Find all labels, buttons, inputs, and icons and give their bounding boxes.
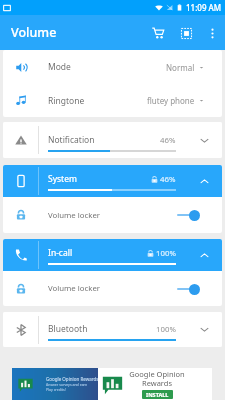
button[interactable]: Ringtone <box>3 84 222 117</box>
staticText: flutey phone <box>147 95 195 106</box>
staticText: Volume locker <box>48 283 101 294</box>
staticText: Ringtone <box>48 95 85 107</box>
button[interactable]: Mode <box>3 50 222 84</box>
button[interactable]: Google Opinion Rewards <box>98 368 212 400</box>
staticText: Google Opinion Rewards <box>129 369 185 388</box>
button[interactable]: Collapse <box>176 239 222 271</box>
staticText: Google Opinion Rewards <box>46 376 99 382</box>
button[interactable]: INSTALL <box>142 390 173 399</box>
button[interactable]: Expand <box>176 122 222 158</box>
staticText: Normal <box>166 62 195 73</box>
button[interactable]: Store <box>144 19 172 47</box>
button[interactable]: Notification <box>3 122 222 158</box>
button[interactable]: Volume locker toggle <box>176 207 202 223</box>
staticText: In-call <box>48 247 73 259</box>
staticText: 100% <box>156 248 176 259</box>
staticText: System <box>48 173 77 185</box>
button[interactable]: Presets <box>172 19 200 47</box>
button[interactable]: Expand <box>176 312 222 347</box>
staticText: 100% <box>156 324 176 335</box>
button[interactable]: Volume locker <box>3 271 222 306</box>
staticText: Volume <box>11 24 57 41</box>
staticText: 11:09 AM <box>186 2 222 13</box>
button[interactable]: In-call <box>3 239 222 271</box>
button[interactable]: Volume locker toggle <box>176 281 202 297</box>
staticText: 46% <box>160 135 176 146</box>
staticText: Answer surveys and earn Play credits! <box>46 382 88 392</box>
staticText: 46% <box>160 174 176 185</box>
button[interactable]: Volume locker <box>3 197 222 233</box>
staticText: Mode <box>48 61 71 73</box>
staticText: Volume locker <box>48 210 101 221</box>
button[interactable]: Collapse <box>176 165 222 197</box>
staticText: Bluetooth <box>48 323 88 335</box>
button[interactable]: Bluetooth <box>3 312 222 347</box>
button[interactable]: Ad creative <box>12 368 98 400</box>
button[interactable]: More options <box>200 21 224 45</box>
staticText: INSTALL <box>146 391 169 398</box>
staticText: Notification <box>48 134 95 146</box>
button[interactable]: System <box>3 165 222 197</box>
